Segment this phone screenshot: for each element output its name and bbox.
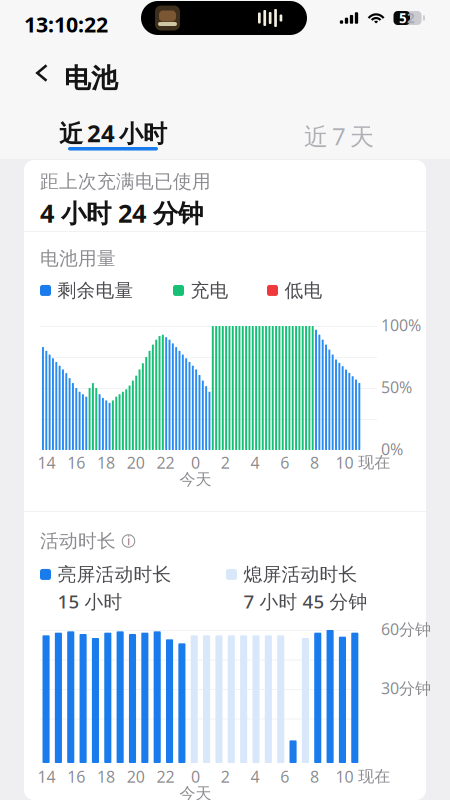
staticText: 2 [407, 9, 415, 27]
staticText: 6 [280, 452, 289, 473]
staticText: 0% [381, 438, 403, 460]
staticText: 5 [399, 9, 407, 27]
staticText: 20 [127, 766, 145, 787]
staticText: 14 [37, 452, 55, 473]
staticText: 今天 [179, 784, 211, 800]
staticText: 10 [335, 452, 353, 473]
staticText: 30分钟 [381, 677, 431, 699]
staticText: 50% [381, 376, 412, 398]
staticText: 60分钟 [381, 618, 431, 640]
staticText: 8 [310, 452, 319, 473]
staticText: 今天 [179, 470, 211, 489]
staticText: 距上次充满电已使用 [40, 170, 211, 193]
staticText: 100% [381, 314, 421, 336]
staticText: 16 [67, 452, 85, 473]
button[interactable]: 返回 [28, 58, 56, 88]
staticText: 10 [335, 766, 353, 787]
staticText: 0 [191, 766, 200, 787]
staticText: 14 [37, 766, 55, 787]
staticText: 13:10:22 [24, 10, 108, 38]
staticText: 电池用量 [40, 247, 116, 270]
staticText: 4 [250, 452, 259, 473]
staticText: 活动时长 [40, 529, 116, 552]
staticText: 电池 [64, 62, 118, 95]
staticText: i [127, 532, 130, 548]
staticText: 2 [221, 766, 230, 787]
staticText: 近 7 天 [304, 120, 374, 152]
staticText: 现在 [358, 767, 390, 786]
staticText: 20 [127, 452, 145, 473]
staticText: 22 [157, 452, 175, 473]
staticText: 16 [67, 766, 85, 787]
staticText: 2 [221, 452, 230, 473]
staticText: 0 [191, 452, 200, 473]
staticText: 18 [97, 452, 115, 473]
staticText: 7 小时 45 分钟 [243, 589, 367, 614]
staticText: 熄屏活动时长 [243, 563, 357, 586]
staticText: 现在 [358, 453, 390, 472]
staticText: 4 [250, 766, 259, 787]
button[interactable]: 近 24 小时 [48, 119, 178, 163]
staticText: 18 [97, 766, 115, 787]
staticText: 近 24 小时 [59, 117, 167, 149]
staticText: 亮屏活动时长 [57, 563, 171, 586]
staticText: 15 小时 [57, 589, 122, 614]
staticText: 4 小时 24 分钟 [40, 196, 203, 230]
staticText: 6 [280, 766, 289, 787]
button[interactable]: 近 7 天 [274, 119, 404, 163]
staticText: 充电 [190, 279, 228, 302]
staticText: 剩余电量 [57, 279, 133, 302]
staticText: 22 [157, 766, 175, 787]
staticText: 低电 [284, 279, 322, 302]
staticText: 8 [310, 766, 319, 787]
